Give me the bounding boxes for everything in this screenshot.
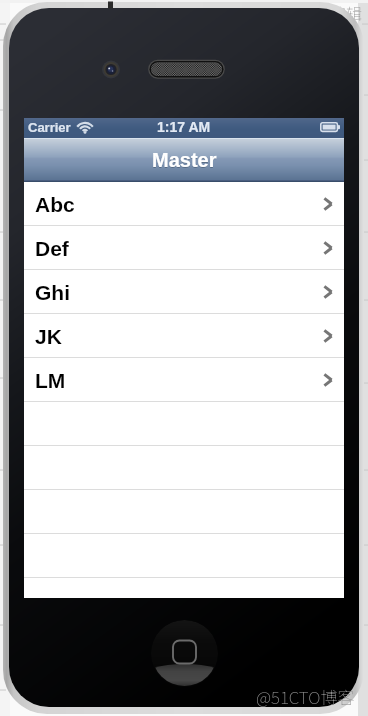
staticText: 1:17 AM (157, 119, 211, 135)
staticText: Def (35, 237, 69, 260)
button[interactable]: Def (24, 226, 344, 270)
staticText: 编辑 (330, 1, 363, 24)
staticText: JK (35, 325, 62, 348)
button[interactable]: Abc (24, 182, 344, 226)
button[interactable]: JK (24, 314, 344, 358)
staticText: Master (152, 149, 217, 171)
button[interactable]: Home (151, 620, 218, 687)
staticText: LM (35, 369, 66, 392)
staticText: Abc (35, 193, 75, 216)
staticText: Master (152, 150, 217, 172)
staticText: Ghi (35, 281, 70, 304)
staticText: Carrier (28, 120, 71, 135)
button[interactable]: LM (24, 358, 344, 402)
staticText: @51CTO博客 (256, 684, 355, 709)
button[interactable]: Ghi (24, 270, 344, 314)
